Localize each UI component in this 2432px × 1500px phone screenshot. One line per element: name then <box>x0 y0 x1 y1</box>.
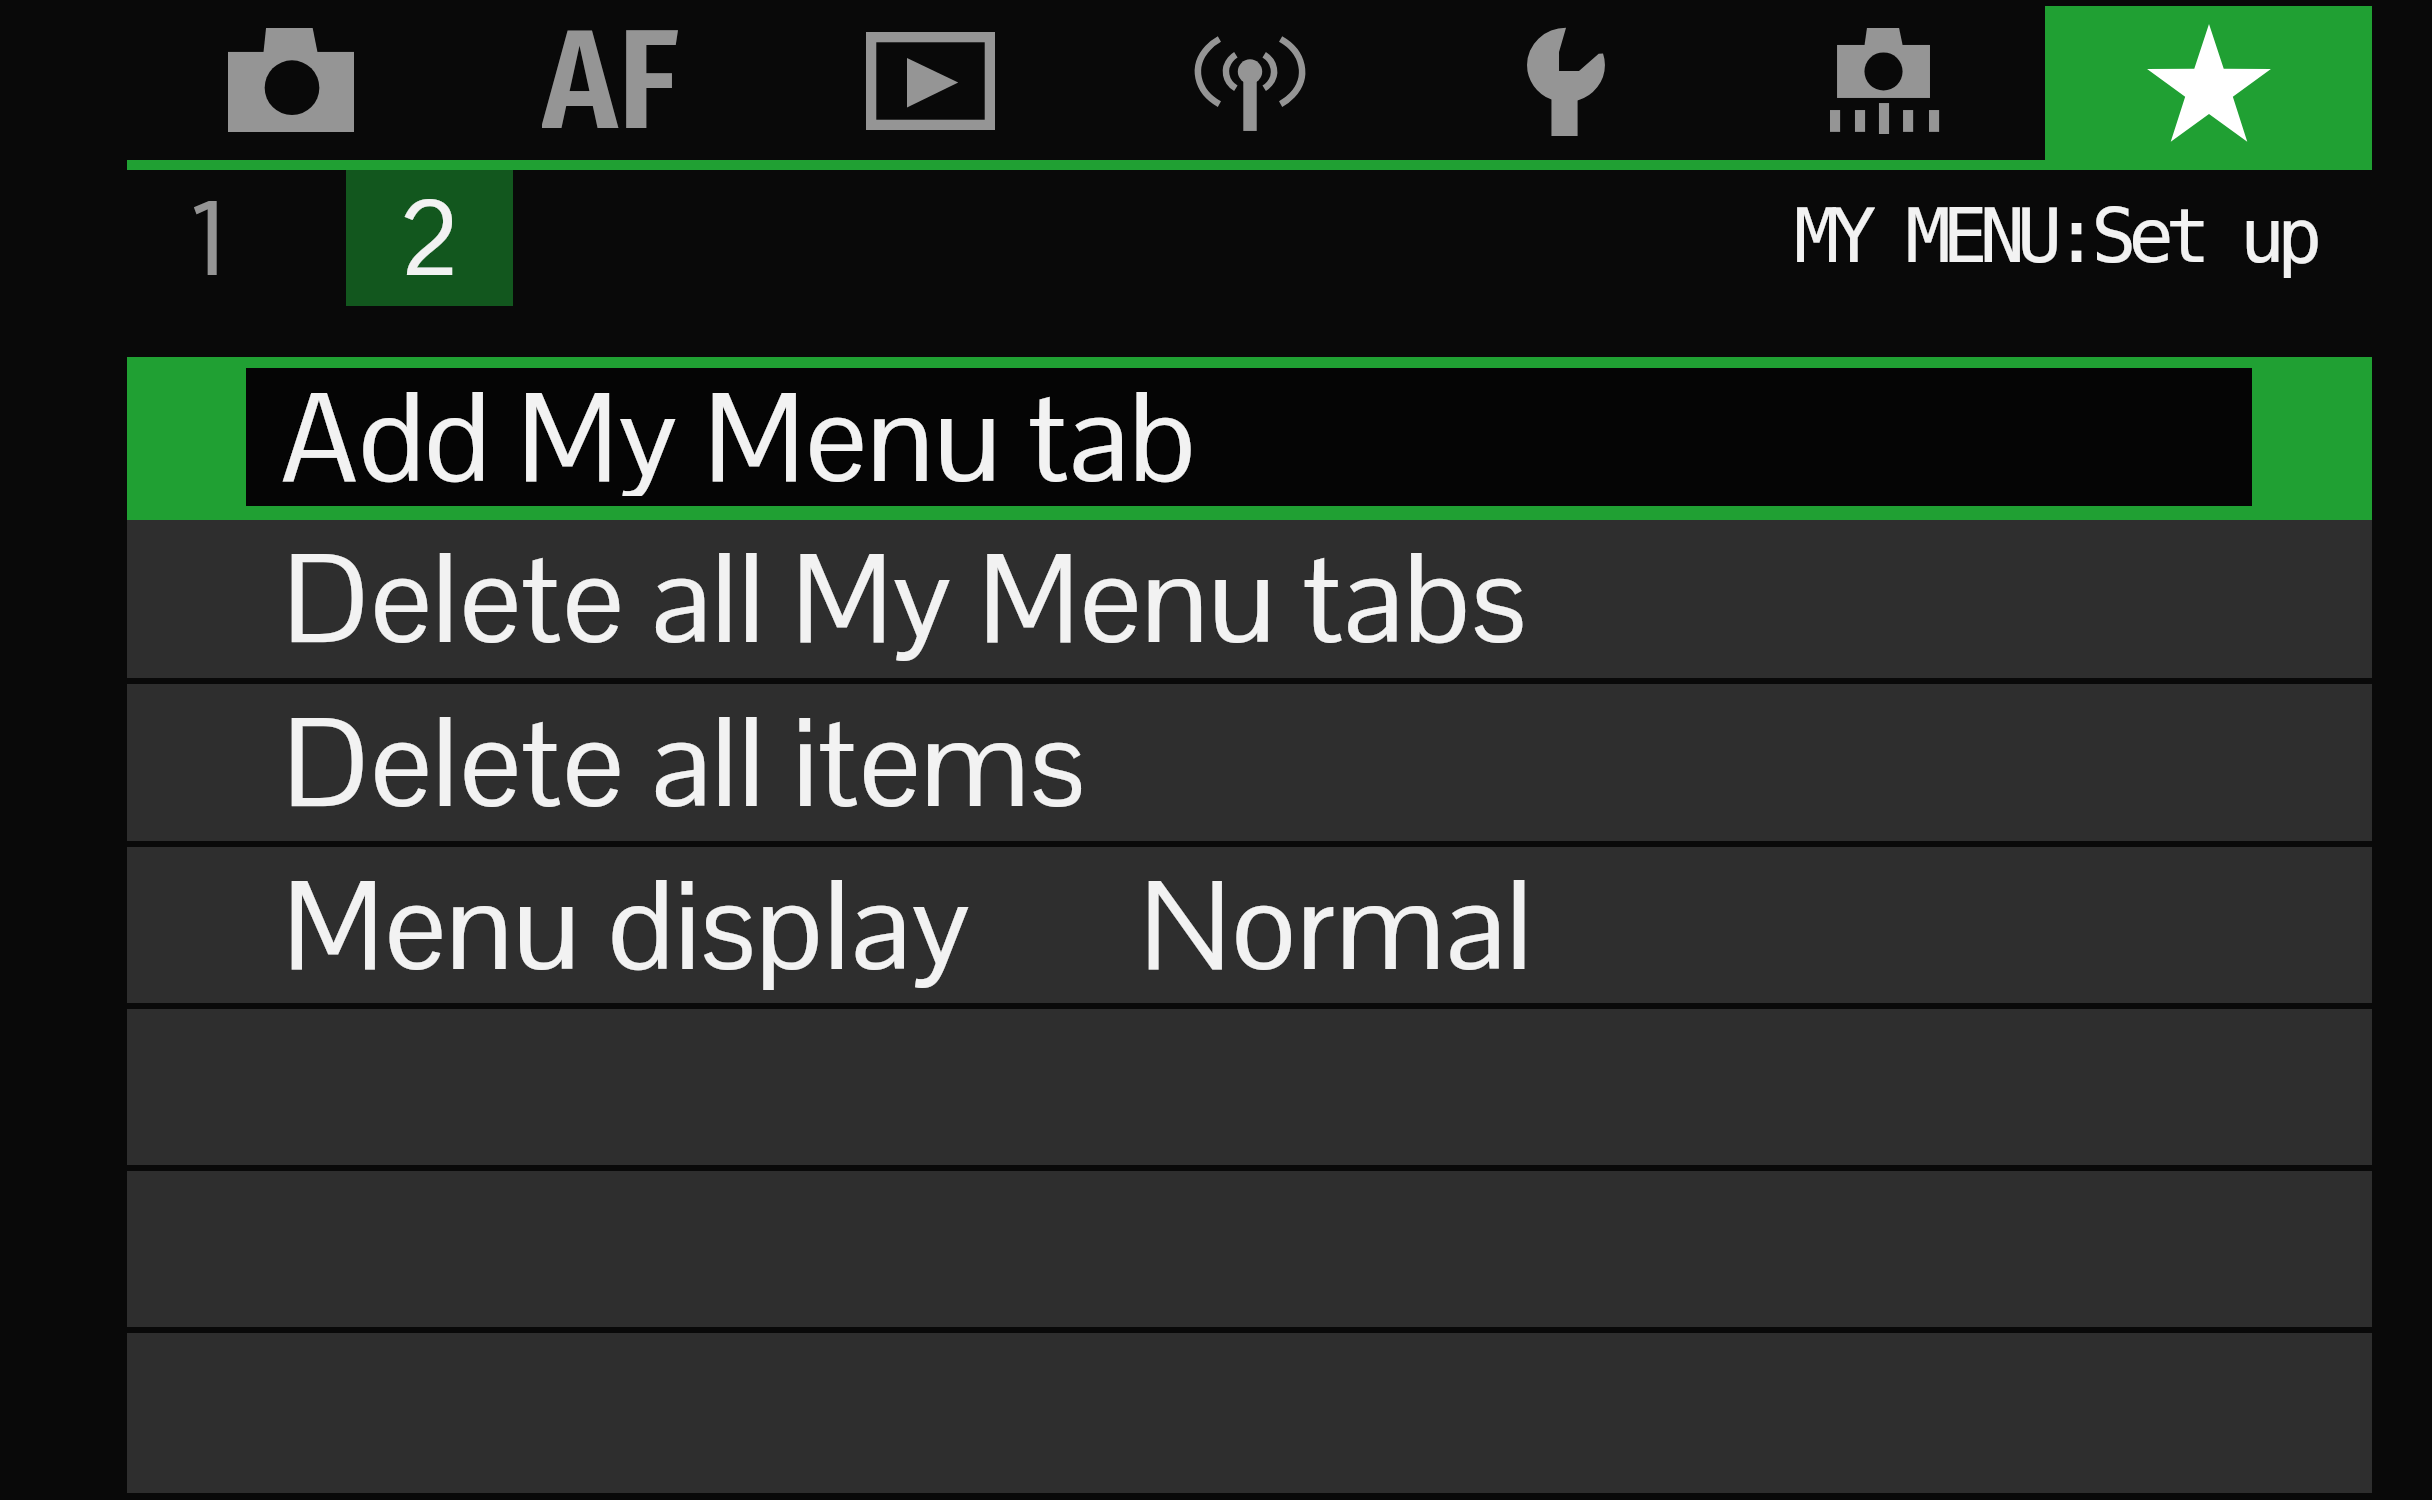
button[interactable]: AF settings <box>492 2 712 138</box>
staticText: MY MENU:Set up <box>1794 192 2315 279</box>
button[interactable]: Custom functions <box>1830 28 1940 134</box>
button[interactable]: 1 <box>123 170 290 306</box>
staticText: Normal <box>1140 846 1533 1002</box>
staticText: Delete all items <box>283 683 1086 840</box>
staticText: Delete all My Menu tabs <box>283 519 1527 677</box>
staticText: 2 <box>398 172 462 305</box>
staticText: Add My Menu tab <box>281 358 1197 496</box>
button[interactable]: 2 <box>346 170 513 306</box>
staticText: AF <box>542 0 680 133</box>
button[interactable]: Shooting settings <box>228 28 354 132</box>
button[interactable]: Menu display <box>127 847 2372 1003</box>
button[interactable]: Delete all items <box>127 684 2372 841</box>
staticText: Menu display <box>283 846 971 1002</box>
button[interactable]: Delete all My Menu tabs <box>127 520 2372 678</box>
button[interactable]: Add My Menu tab <box>127 357 2372 520</box>
button[interactable]: My Menu <box>2045 6 2372 160</box>
button[interactable]: Wireless settings <box>1193 26 1305 132</box>
button[interactable]: Set up <box>1526 28 1612 136</box>
button[interactable]: Playback <box>866 32 995 130</box>
staticText: 1 <box>188 172 231 305</box>
